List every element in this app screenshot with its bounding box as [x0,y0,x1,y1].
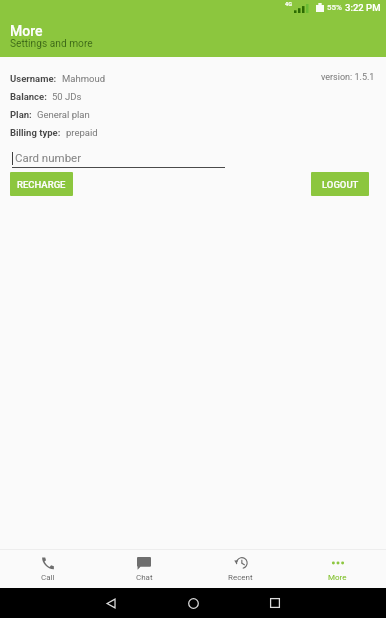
staticText: Recent [228,573,253,582]
staticText: Balance: [10,91,47,102]
staticText: Settings and more [10,38,93,50]
staticText: prepaid [66,127,98,138]
button[interactable]: Recent [192,550,289,588]
staticText: 50 JDs [52,91,82,102]
staticText: RECHARGE [17,179,66,190]
staticText: 55% [327,3,342,12]
button[interactable]: Back [96,588,126,618]
button[interactable]: Chat [96,550,192,588]
button[interactable]: LOGOUT [311,172,369,196]
staticText: 3:22 PM [345,2,381,13]
button[interactable]: Call [0,550,96,588]
staticText: version: 1.5.1 [321,72,375,83]
staticText: Call [41,573,55,582]
staticText: Billing type: [10,127,61,138]
staticText: Mahmoud [62,73,106,84]
staticText: More [10,23,43,39]
button[interactable]: More [289,550,386,588]
button[interactable]: Home [178,588,208,618]
staticText: Chat [136,573,153,582]
staticText: LOGOUT [322,179,359,190]
staticText: Plan: [10,109,32,120]
staticText: 4G [285,1,292,7]
button[interactable]: Card number [12,150,225,168]
staticText: More [328,573,347,582]
staticText: Username: [10,73,57,84]
staticText: Card number [15,151,82,164]
button[interactable]: Recent apps [260,588,290,618]
staticText: General plan [37,109,90,120]
button[interactable]: RECHARGE [10,172,73,196]
